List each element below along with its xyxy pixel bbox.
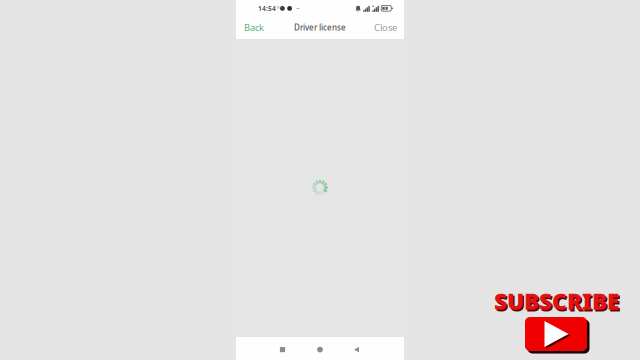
staticText: Close [374,21,397,34]
button[interactable]: Recent apps [267,338,297,360]
staticText: Driver license [294,22,346,33]
button[interactable]: Home [305,338,335,360]
button[interactable]: Back [341,338,371,360]
staticText: 14:54 [258,4,276,13]
button[interactable]: Back [236,16,272,38]
staticText: Back [244,21,264,34]
button[interactable]: Close [367,16,404,38]
staticText: % [276,5,279,10]
staticText: SUBSCRIBE [496,287,621,318]
staticText: SUBSCRIBE [494,286,619,316]
